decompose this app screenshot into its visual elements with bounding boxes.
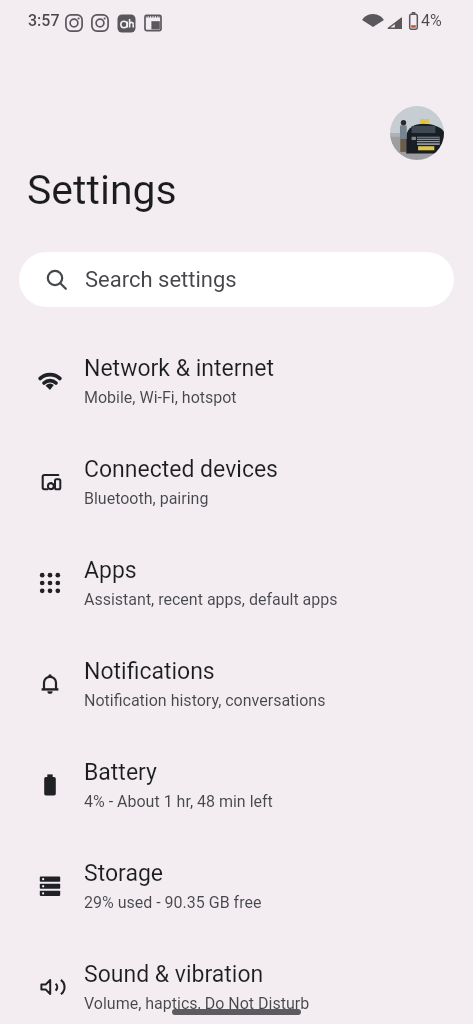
staticText: Search settings bbox=[85, 267, 237, 293]
staticText: Battery bbox=[84, 759, 157, 786]
staticText: 4% bbox=[421, 11, 442, 30]
staticText: Sound & vibration bbox=[84, 961, 264, 988]
button[interactable]: Network & internet bbox=[0, 330, 473, 431]
staticText: Assistant, recent apps, default apps bbox=[84, 590, 338, 609]
staticText: Settings bbox=[27, 166, 177, 214]
button[interactable]: Battery bbox=[0, 734, 473, 835]
button[interactable]: Notifications bbox=[0, 633, 473, 734]
button[interactable]: Storage bbox=[0, 835, 473, 936]
staticText: 29% used - 90.35 GB free bbox=[84, 893, 262, 912]
staticText: Storage bbox=[84, 860, 164, 887]
button[interactable] bbox=[390, 106, 444, 160]
button[interactable]: Connected devices bbox=[0, 431, 473, 532]
button[interactable]: Search settings bbox=[19, 252, 454, 307]
staticText: Bluetooth, pairing bbox=[84, 489, 209, 508]
staticText: Volume, haptics, Do Not Disturb bbox=[84, 994, 310, 1013]
staticText: Network & internet bbox=[84, 355, 274, 382]
staticText: 3:57 bbox=[28, 11, 60, 30]
button[interactable]: Apps bbox=[0, 532, 473, 633]
staticText: Apps bbox=[84, 557, 137, 584]
staticText: Mobile, Wi-Fi, hotspot bbox=[84, 388, 237, 407]
staticText: Notification history, conversations bbox=[84, 691, 326, 710]
staticText: Notifications bbox=[84, 658, 215, 685]
button[interactable]: Sound & vibration bbox=[0, 936, 473, 1024]
staticText: 4% - About 1 hr, 48 min left bbox=[84, 792, 273, 811]
staticText: Connected devices bbox=[84, 456, 278, 483]
